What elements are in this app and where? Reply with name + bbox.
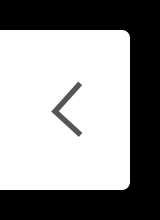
button[interactable]: Back	[46, 79, 90, 140]
